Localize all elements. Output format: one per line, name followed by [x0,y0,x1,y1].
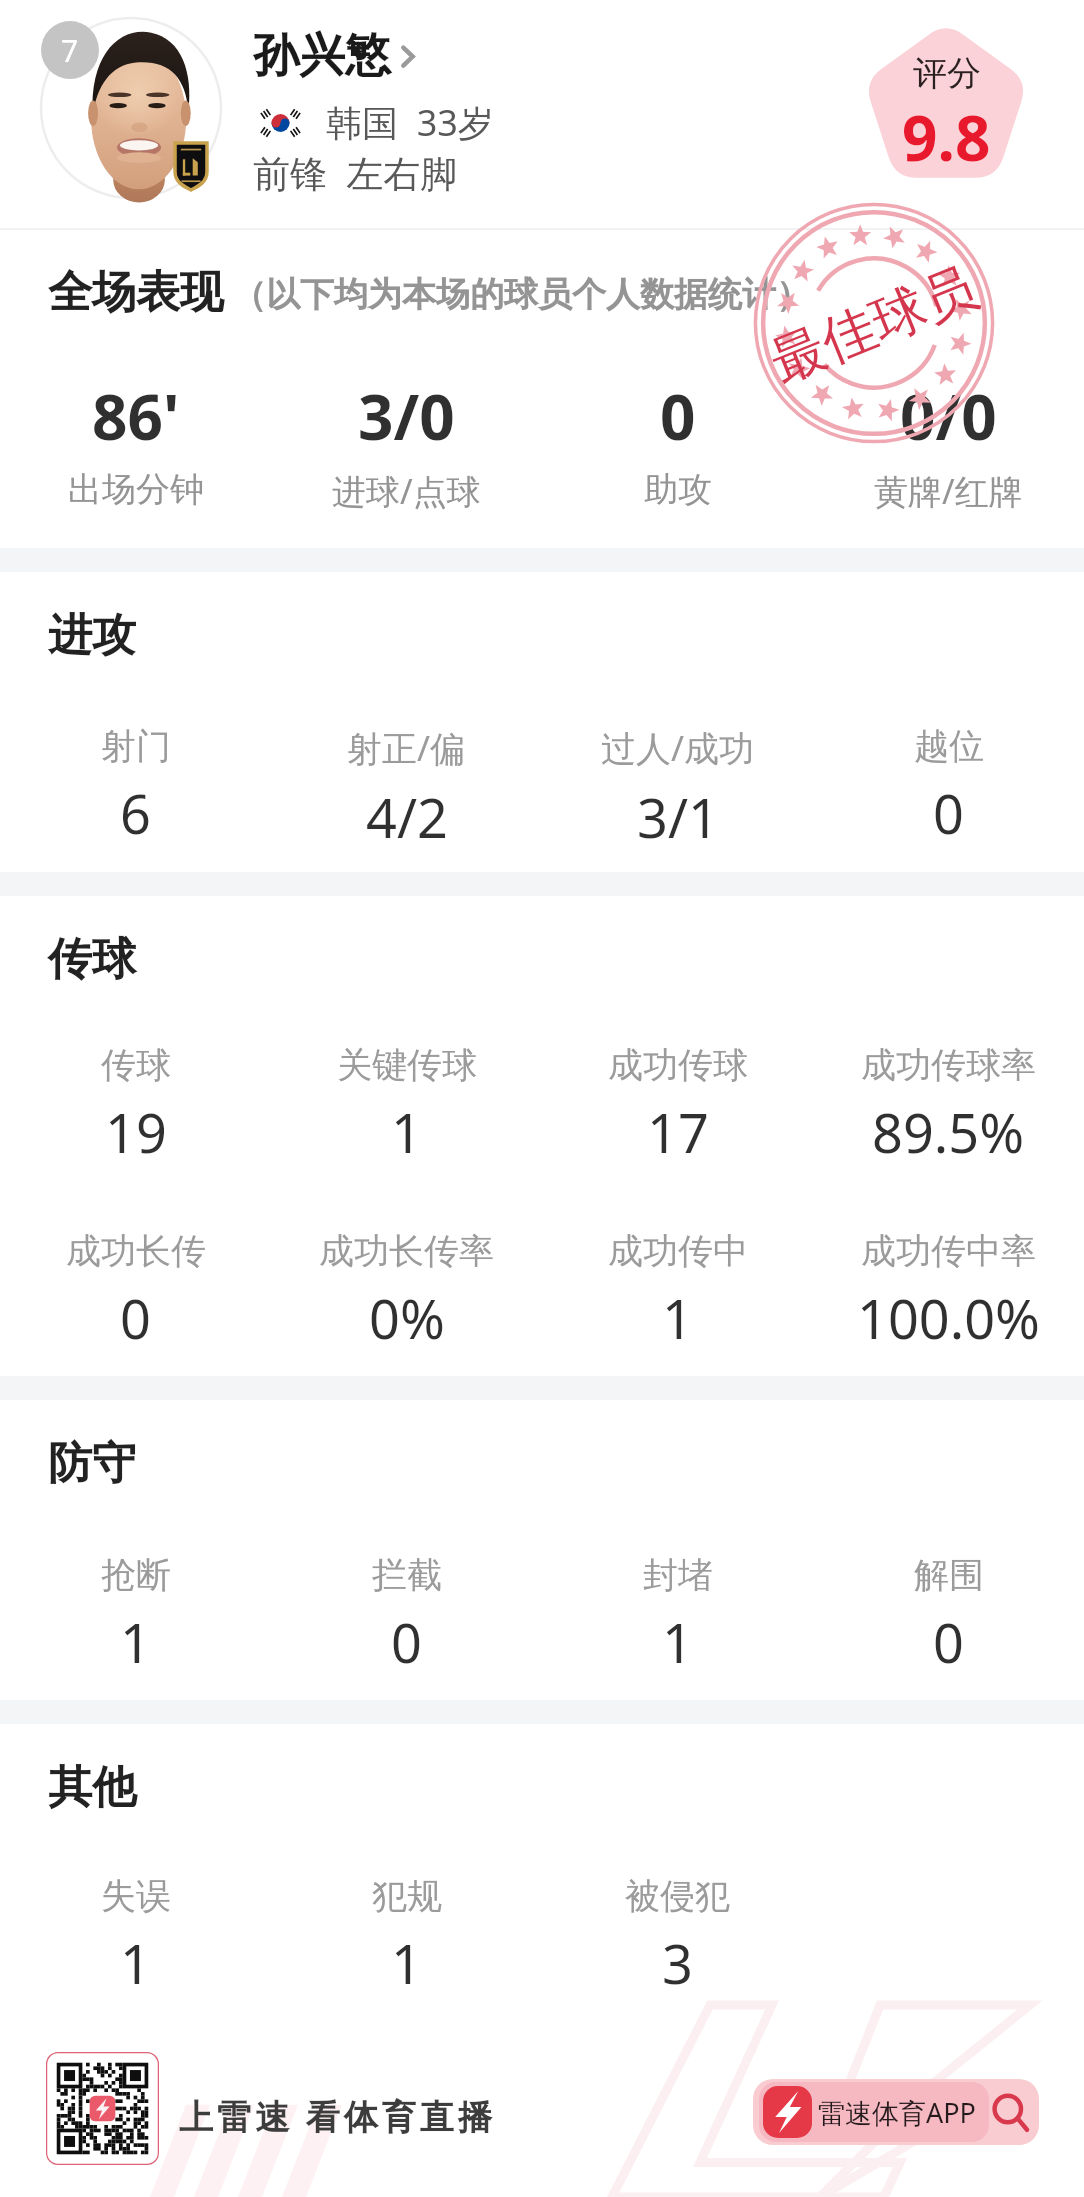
staticText: 进球/点球 [332,468,481,514]
staticText: （以下均为本场的球员个人数据统计） [232,273,810,316]
staticText: 3 [662,1926,693,2000]
staticText: 韩国 33岁 [326,98,494,147]
staticText: 89.5% [872,1095,1025,1169]
staticText: 0 [391,1605,422,1679]
staticText: 孙兴慜 [253,27,391,85]
staticText: 传球 [48,932,136,987]
button[interactable]: QR code [46,2052,159,2165]
staticText: 成功传球 [608,1043,748,1087]
staticText: 过人/成功 [601,724,755,772]
button[interactable]: 雷速体育APP [753,2079,1039,2145]
staticText: 19 [105,1095,167,1169]
staticText: 0% [369,1281,445,1355]
staticText: 射门 [101,724,171,768]
staticText: 前锋 左右脚 [253,147,458,198]
staticText: 0 [660,374,696,458]
staticText: 3/0 [358,374,455,458]
staticText: 助攻 [644,468,712,511]
staticText: 86' [92,374,180,458]
staticText: 关键传球 [337,1043,477,1087]
staticText: 3/1 [637,780,719,854]
staticText: 犯规 [372,1874,442,1918]
other: Search [991,2093,1031,2133]
button[interactable]: Player photo [40,17,222,199]
staticText: 封堵 [643,1553,713,1597]
staticText: 出场分钟 [68,468,204,511]
staticText: 成功传球率 [861,1043,1036,1087]
staticText: 1 [662,1605,693,1679]
staticText: 抢断 [101,1553,171,1597]
staticText: 上雷速 看体育直播 [179,2093,496,2139]
staticText: 成功传中率 [861,1229,1036,1273]
button[interactable]: 评分 [864,21,1028,181]
staticText: 进攻 [48,608,136,663]
staticText: 被侵犯 [625,1874,730,1918]
staticText: 成功传中 [608,1229,748,1273]
staticText: 传球 [101,1043,171,1087]
staticText: 9.8 [902,95,991,179]
staticText: 1 [391,1095,422,1169]
staticText: 防守 [48,1436,136,1491]
staticText: 7 [61,30,79,71]
staticText: 1 [391,1926,422,2000]
staticText: 0 [933,776,964,850]
button[interactable]: 孙兴慜 [253,27,417,85]
staticText: 黄牌/红牌 [874,468,1023,514]
staticText: 雷速体育APP [818,2094,976,2131]
staticText: 1 [120,1605,151,1679]
staticText: 越位 [914,724,984,768]
staticText: 拦截 [372,1553,442,1597]
staticText: 评分 [913,52,981,95]
staticText: 6 [120,776,151,850]
staticText: 成功长传 [66,1229,206,1273]
staticText: 0/0 [900,374,997,458]
staticText: 失误 [101,1874,171,1918]
staticText: 1 [662,1281,693,1355]
staticText: 0 [933,1605,964,1679]
staticText: 100.0% [857,1281,1040,1355]
button[interactable]: Jersey number 7 [41,21,99,79]
staticText: 成功长传率 [319,1229,494,1273]
staticText: 0 [120,1281,151,1355]
staticText: 1 [120,1926,151,2000]
staticText: 17 [647,1095,709,1169]
staticText: 射正/偏 [347,724,466,772]
staticText: 解围 [914,1553,984,1597]
staticText: 最佳球员 [761,253,987,397]
staticText: 4/2 [366,780,448,854]
staticText: 全场表现 [48,265,224,320]
staticText: 其他 [48,1760,136,1815]
